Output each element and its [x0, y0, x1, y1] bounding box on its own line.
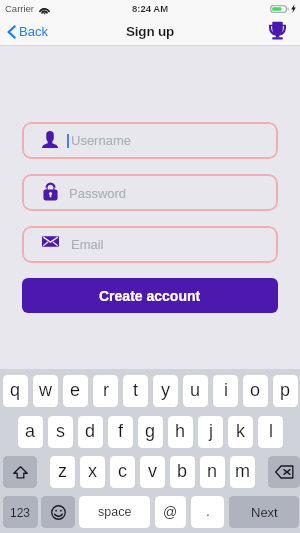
staticText: 123: [10, 506, 31, 519]
staticText: a: [25, 421, 36, 441]
button[interactable]: r: [93, 375, 118, 407]
staticText: l: [269, 421, 273, 441]
button[interactable]: o: [243, 375, 268, 407]
button[interactable]: Backspace: [268, 456, 300, 488]
staticText: Create account: [99, 288, 201, 304]
staticText: o: [250, 380, 261, 400]
button[interactable]: g: [138, 416, 163, 448]
button[interactable]: c: [110, 456, 135, 488]
staticText: Sign up: [126, 24, 175, 39]
staticText: k: [236, 421, 245, 441]
button[interactable]: Shift: [3, 456, 37, 488]
staticText: t: [133, 380, 139, 400]
button[interactable]: e: [63, 375, 88, 407]
button[interactable]: Back: [0, 21, 55, 42]
button[interactable]: Password: [22, 174, 278, 211]
button[interactable]: y: [153, 375, 178, 407]
button[interactable]: j: [198, 416, 223, 448]
button[interactable]: Emoji: [41, 496, 75, 528]
staticText: b: [177, 461, 188, 481]
button[interactable]: z: [50, 456, 75, 488]
staticText: e: [70, 380, 81, 400]
staticText: w: [39, 380, 52, 400]
button[interactable]: s: [48, 416, 73, 448]
button[interactable]: u: [183, 375, 208, 407]
button[interactable]: q: [3, 375, 28, 407]
staticText: h: [175, 421, 186, 441]
button[interactable]: Email: [22, 226, 278, 263]
staticText: r: [103, 380, 109, 400]
staticText: Password: [69, 186, 127, 201]
button[interactable]: i: [213, 375, 238, 407]
button[interactable]: n: [200, 456, 225, 488]
staticText: s: [56, 421, 65, 441]
staticText: d: [85, 421, 96, 441]
staticText: m: [235, 461, 250, 481]
staticText: @: [163, 504, 178, 520]
button[interactable]: Create account: [22, 278, 278, 313]
staticText: f: [118, 421, 124, 441]
staticText: Back: [19, 24, 48, 39]
button[interactable]: Trophy: [260, 19, 300, 45]
staticText: c: [118, 461, 127, 481]
staticText: space: [98, 505, 132, 519]
button[interactable]: h: [168, 416, 193, 448]
button[interactable]: x: [80, 456, 105, 488]
button[interactable]: Username: [22, 122, 278, 159]
staticText: j: [209, 421, 213, 441]
staticText: g: [145, 421, 156, 441]
button[interactable]: .: [191, 496, 224, 528]
button[interactable]: b: [170, 456, 195, 488]
button[interactable]: m: [230, 456, 255, 488]
staticText: .: [206, 503, 210, 519]
staticText: i: [224, 380, 228, 400]
button[interactable]: k: [228, 416, 253, 448]
button[interactable]: f: [108, 416, 133, 448]
button[interactable]: w: [33, 375, 58, 407]
button[interactable]: @: [155, 496, 186, 528]
button[interactable]: l: [258, 416, 283, 448]
button[interactable]: d: [78, 416, 103, 448]
staticText: Next: [251, 505, 278, 520]
staticText: y: [161, 380, 170, 400]
staticText: p: [280, 380, 291, 400]
button[interactable]: 123: [3, 496, 38, 528]
staticText: 8:24 AM: [132, 3, 169, 14]
button[interactable]: a: [18, 416, 43, 448]
staticText: z: [58, 461, 67, 481]
button[interactable]: Next: [229, 496, 299, 528]
button[interactable]: v: [140, 456, 165, 488]
staticText: x: [88, 461, 97, 481]
staticText: v: [148, 461, 157, 481]
staticText: Username: [71, 133, 131, 148]
staticText: Email: [71, 237, 104, 252]
button[interactable]: space: [79, 496, 150, 528]
staticText: u: [190, 380, 201, 400]
button[interactable]: p: [273, 375, 298, 407]
staticText: Carrier: [5, 3, 35, 14]
staticText: n: [207, 461, 218, 481]
button[interactable]: t: [123, 375, 148, 407]
staticText: q: [10, 380, 21, 400]
